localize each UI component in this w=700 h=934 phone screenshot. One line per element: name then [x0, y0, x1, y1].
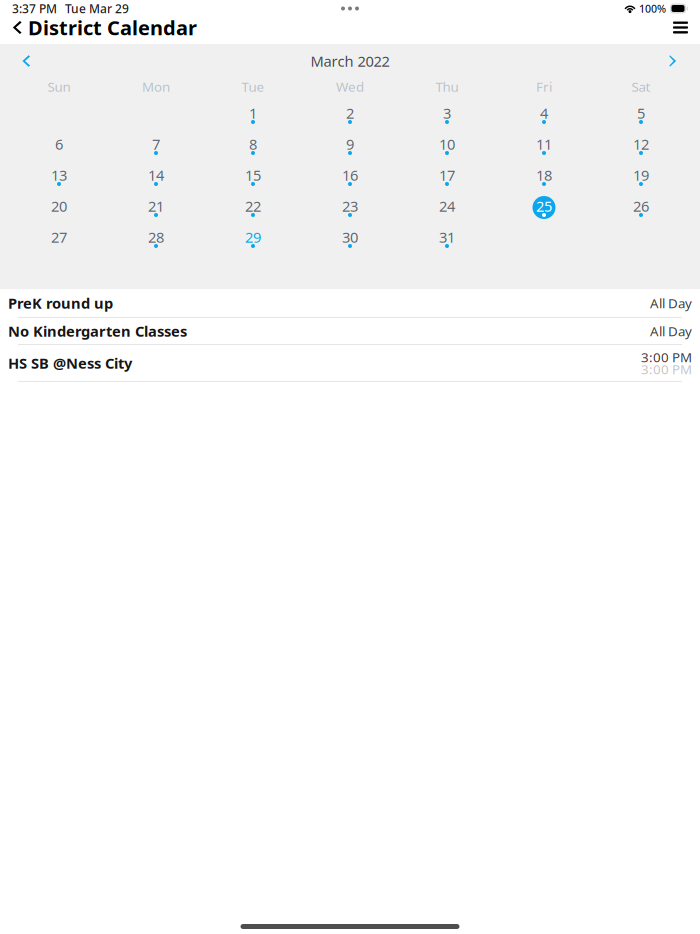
staticText: PreK round up [8, 293, 113, 313]
staticText: Thu [435, 78, 458, 95]
staticText: 26 [633, 196, 649, 216]
staticText: 19 [633, 165, 649, 185]
button[interactable]: 6 [10, 134, 107, 165]
button[interactable]: 1 [204, 103, 301, 134]
staticText: 3 [443, 103, 451, 123]
button[interactable]: 9 [301, 134, 398, 165]
button[interactable]: 30 [301, 227, 398, 258]
button[interactable]: 17 [398, 165, 495, 196]
staticText: Tue [241, 78, 264, 95]
staticText: 1 [249, 103, 257, 123]
staticText: Sun [47, 78, 70, 95]
button[interactable]: 31 [398, 227, 495, 258]
staticText: 9 [346, 134, 354, 154]
staticText: 14 [148, 165, 164, 185]
button[interactable]: 22 [204, 196, 301, 227]
staticText: 3:37 PM [12, 0, 57, 16]
button[interactable]: 26 [592, 196, 689, 227]
button[interactable]: HS SB @Ness City [0, 345, 700, 381]
staticText: 20 [51, 196, 67, 216]
button[interactable]: 28 [107, 227, 204, 258]
staticText: 100% [639, 1, 666, 16]
button[interactable]: 14 [107, 165, 204, 196]
staticText: Mon [142, 78, 170, 95]
staticText: 28 [148, 227, 164, 247]
staticText: 12 [633, 134, 649, 154]
staticText: 15 [245, 165, 261, 185]
button[interactable]: 18 [495, 165, 592, 196]
button[interactable]: Previous month [12, 47, 41, 75]
button[interactable]: 12 [592, 134, 689, 165]
button[interactable]: PreK round up [0, 289, 700, 317]
staticText: 23 [342, 196, 358, 216]
staticText: Sat [631, 78, 650, 95]
button[interactable]: 20 [10, 196, 107, 227]
staticText: 16 [342, 165, 358, 185]
staticText: Tue Mar 29 [65, 0, 129, 16]
staticText: 25 [536, 196, 552, 216]
button[interactable]: Next month [659, 47, 688, 75]
button[interactable]: 23 [301, 196, 398, 227]
button[interactable]: 10 [398, 134, 495, 165]
button[interactable]: Back [11, 17, 24, 38]
button[interactable]: 11 [495, 134, 592, 165]
staticText: 3:00 PM [641, 348, 692, 366]
staticText: 4 [540, 103, 548, 123]
staticText: District Calendar [28, 14, 197, 41]
button[interactable]: 5 [592, 103, 689, 134]
button[interactable]: 19 [592, 165, 689, 196]
staticText: 24 [439, 196, 455, 216]
button[interactable]: 21 [107, 196, 204, 227]
staticText: 2 [346, 103, 354, 123]
staticText: No Kindergarten Classes [8, 321, 187, 341]
staticText: 13 [51, 165, 67, 185]
staticText: Wed [336, 78, 364, 95]
staticText: 3:00 PM [641, 360, 692, 378]
button[interactable]: 24 [398, 196, 495, 227]
staticText: 6 [55, 134, 63, 154]
button[interactable]: 8 [204, 134, 301, 165]
staticText: 31 [439, 227, 455, 247]
button[interactable]: 27 [10, 227, 107, 258]
button[interactable]: 13 [10, 165, 107, 196]
staticText: All Day [650, 294, 692, 312]
button[interactable]: 29 [204, 227, 301, 258]
staticText: 11 [536, 134, 552, 154]
staticText: 10 [439, 134, 455, 154]
staticText: 30 [342, 227, 358, 247]
button[interactable]: 3 [398, 103, 495, 134]
button[interactable]: 16 [301, 165, 398, 196]
button[interactable]: No Kindergarten Classes [0, 318, 700, 344]
button[interactable]: 4 [495, 103, 592, 134]
staticText: March 2022 [310, 51, 389, 71]
staticText: 29 [245, 227, 261, 247]
staticText: 8 [249, 134, 257, 154]
button[interactable]: 15 [204, 165, 301, 196]
staticText: 27 [51, 227, 67, 247]
staticText: 22 [245, 196, 261, 216]
button[interactable]: 25 [495, 196, 592, 227]
staticText: 7 [152, 134, 160, 154]
staticText: All Day [650, 322, 692, 340]
button[interactable]: 7 [107, 134, 204, 165]
button[interactable]: 2 [301, 103, 398, 134]
staticText: 17 [439, 165, 455, 185]
button[interactable]: Menu [673, 16, 688, 38]
staticText: 21 [148, 196, 164, 216]
staticText: 18 [536, 165, 552, 185]
staticText: Fri [536, 78, 552, 95]
staticText: 5 [637, 103, 645, 123]
staticText: HS SB @Ness City [8, 353, 132, 373]
